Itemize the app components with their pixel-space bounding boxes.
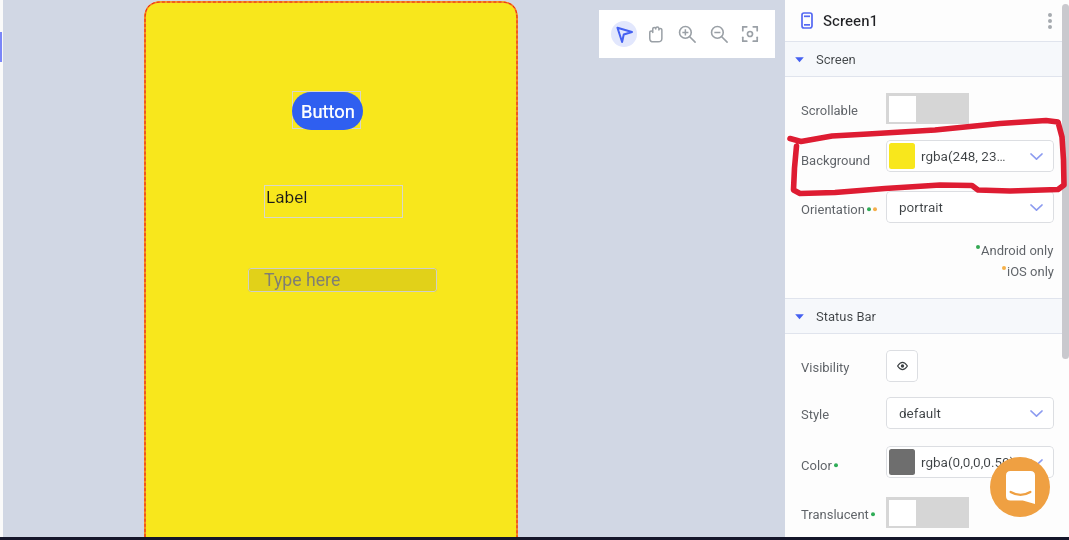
staticText: Orientation bbox=[801, 202, 865, 217]
staticText: default bbox=[899, 405, 941, 421]
button[interactable]: rgba(0,0,0,0.50) bbox=[886, 446, 1054, 478]
staticText: Style bbox=[801, 407, 830, 422]
button[interactable]: Fit to screen bbox=[737, 21, 763, 47]
staticText: Label bbox=[266, 187, 308, 207]
button[interactable]: Status Bar bbox=[785, 299, 1069, 333]
staticText: Color bbox=[801, 458, 832, 473]
button[interactable]: Screen bbox=[785, 42, 1069, 76]
button[interactable] bbox=[886, 497, 969, 528]
button[interactable]: Pan tool bbox=[642, 21, 668, 47]
button[interactable]: Zoom out bbox=[706, 21, 732, 47]
button[interactable]: Type here bbox=[248, 268, 437, 292]
button[interactable]: portrait bbox=[886, 191, 1054, 223]
button[interactable]: rgba(248, 23… bbox=[886, 140, 1054, 172]
button[interactable]: Label bbox=[264, 185, 403, 218]
staticText: Translucent bbox=[801, 507, 869, 522]
staticText: iOS only bbox=[1007, 264, 1054, 279]
staticText: Android only bbox=[981, 243, 1054, 258]
staticText: Button bbox=[301, 101, 355, 122]
button[interactable]: Open chat bbox=[990, 457, 1050, 517]
button[interactable]: Select tool bbox=[611, 21, 637, 47]
staticText: Scrollable bbox=[801, 103, 858, 118]
staticText: Screen bbox=[816, 52, 856, 67]
button[interactable]: More options bbox=[1035, 6, 1065, 36]
button[interactable]: default bbox=[886, 397, 1054, 429]
button[interactable]: Button bbox=[292, 92, 363, 130]
button[interactable]: Visibility bbox=[886, 350, 918, 382]
staticText: Type here bbox=[264, 270, 341, 291]
staticText: Status Bar bbox=[816, 309, 876, 324]
staticText: portrait bbox=[899, 199, 943, 215]
staticText: Background bbox=[801, 153, 871, 168]
staticText: Visibility bbox=[801, 360, 850, 375]
staticText: rgba(248, 23… bbox=[921, 148, 1006, 164]
button[interactable] bbox=[886, 93, 969, 124]
staticText: rgba(0,0,0,0.50) bbox=[921, 454, 1015, 470]
button[interactable]: Zoom in bbox=[674, 21, 700, 47]
staticText: Screen1 bbox=[823, 12, 879, 30]
